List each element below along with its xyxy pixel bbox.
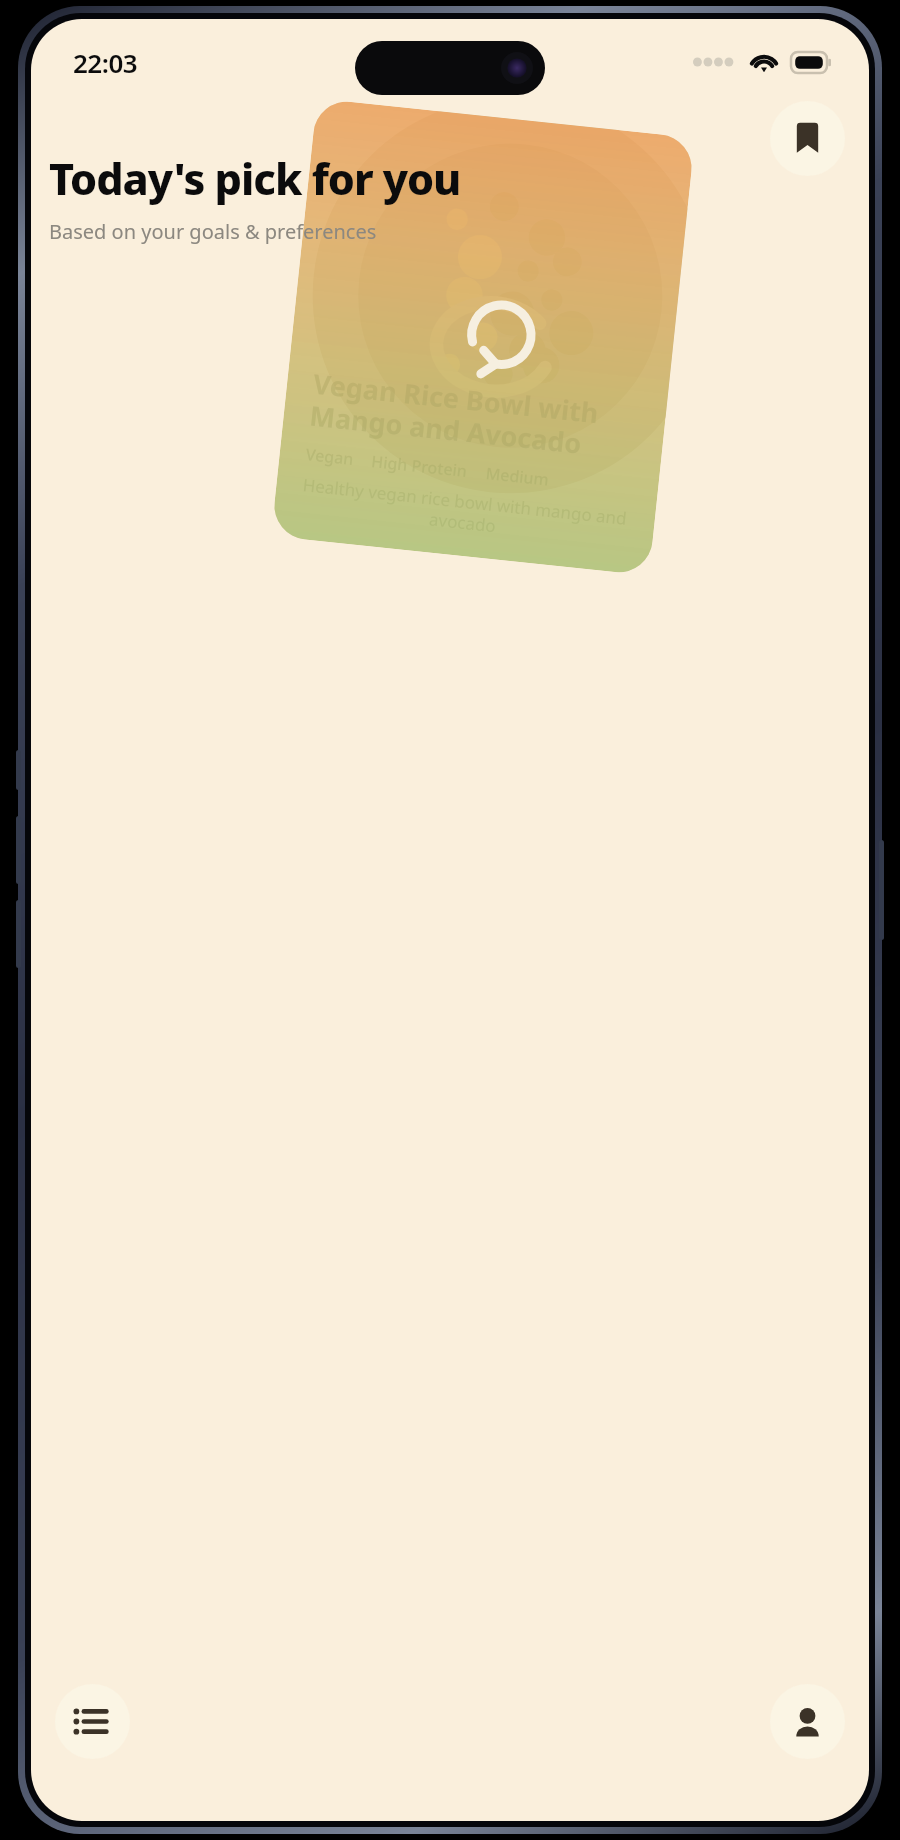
button[interactable]: Saved recipes bbox=[770, 101, 845, 176]
staticText: Medium bbox=[485, 462, 550, 491]
button[interactable]: Vegan Rice Bowl with Mango and Avocado bbox=[271, 98, 695, 576]
button[interactable]: Profile bbox=[770, 1684, 845, 1759]
staticText: Today's pick for you bbox=[49, 149, 461, 208]
staticText: Vegan Rice Bowl with Mango and Avocado bbox=[308, 365, 601, 463]
staticText: 22:03 bbox=[73, 45, 138, 80]
staticText: Vegan bbox=[305, 443, 355, 470]
staticText: High Protein bbox=[370, 450, 469, 482]
button[interactable]: Recipe list bbox=[55, 1684, 130, 1759]
staticText: Based on your goals & preferences bbox=[49, 218, 377, 245]
staticText: Healthy vegan rice bowl with mango and a… bbox=[299, 473, 628, 551]
